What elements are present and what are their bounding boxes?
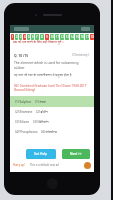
button[interactable]: 3 — [19, 34, 22, 40]
staticText: (3) सिलिकॉन — [33, 120, 49, 124]
button[interactable]: 17 — [85, 34, 89, 40]
staticText: 4 — [24, 35, 26, 39]
button[interactable]: Next >> — [62, 149, 90, 159]
button[interactable]: Get Help — [26, 149, 56, 159]
staticText: 15 — [76, 35, 79, 39]
button[interactable]: 16 — [80, 34, 84, 40]
button[interactable]: 13 — [65, 34, 69, 40]
staticText: 13 — [66, 35, 69, 39]
button[interactable]: 2 — [15, 34, 18, 40]
staticText: This is a default next ad — [30, 163, 59, 167]
button[interactable]: 15 — [75, 34, 79, 40]
staticText: 5 — [28, 35, 30, 39]
button[interactable]: (3) Silicon — [10, 117, 94, 127]
button[interactable]: 8 — [40, 34, 44, 40]
staticText: 14 — [71, 35, 74, 39]
button[interactable]: 4 — [23, 34, 26, 40]
staticText: 10 — [51, 35, 54, 39]
staticText: SSC Combined Graduate Level Tier I Exam … — [14, 84, 90, 92]
staticText: Get Help — [34, 152, 48, 156]
staticText: (1) गंधक — [35, 100, 46, 104]
button[interactable]: 12 — [60, 34, 64, 40]
button[interactable]: 5 — [27, 34, 30, 40]
staticText: Next >> — [70, 152, 82, 156]
button[interactable]: 18 — [90, 34, 94, 40]
staticText: Hurry up! — [13, 163, 25, 167]
staticText: Q. 10 /15 — [14, 53, 29, 57]
staticText: प्रश्न को हल करने के लिए सही विकल्प चुने… — [13, 40, 64, 44]
staticText: 16 — [81, 35, 84, 39]
staticText: 8 — [41, 35, 43, 39]
button[interactable] — [14, 27, 29, 31]
button[interactable]: (4) Phosphorus — [10, 127, 94, 137]
staticText: (4) Phosphorus — [15, 130, 38, 134]
button[interactable]: 7 — [35, 34, 39, 40]
button[interactable]: 11 — [55, 34, 59, 40]
staticText: (1) Sulphur — [15, 100, 32, 104]
button[interactable]: Advertisement — [84, 162, 91, 169]
staticText: (4) फॉस्फोरस — [41, 130, 57, 134]
button[interactable]: 6 — [31, 34, 34, 40]
staticText: 12 — [61, 35, 64, 39]
staticText: (2) ब्रोमीन — [36, 110, 48, 114]
button[interactable]: 9 — [45, 34, 49, 40]
staticText: The element which is used for vulcanisin… — [14, 60, 90, 70]
button[interactable] — [81, 27, 90, 31]
staticText: 6 — [32, 35, 34, 39]
staticText: (2) Bromine — [15, 110, 33, 114]
button[interactable]: 1 — [11, 34, 14, 40]
staticText: ( Chemistry ) — [72, 53, 90, 57]
staticText: 17 — [86, 35, 89, 39]
button[interactable]: 14 — [70, 34, 74, 40]
staticText: 7 — [36, 35, 38, 39]
staticText: 2 — [16, 35, 18, 39]
staticText: (3) Silicon — [15, 120, 30, 124]
staticText: 1 — [12, 35, 14, 39]
staticText: 9 — [46, 35, 48, 39]
button[interactable]: (2) Bromine — [10, 107, 94, 117]
staticText: 18 — [91, 35, 94, 39]
staticText: वह तत्व जो रबर के वल्कनीकरण में प्रयुक्त… — [14, 72, 90, 76]
staticText: 11 — [56, 35, 59, 39]
staticText: 3 — [20, 35, 22, 39]
button[interactable]: (1) Sulphur — [10, 96, 94, 107]
button[interactable]: 10 — [50, 34, 54, 40]
